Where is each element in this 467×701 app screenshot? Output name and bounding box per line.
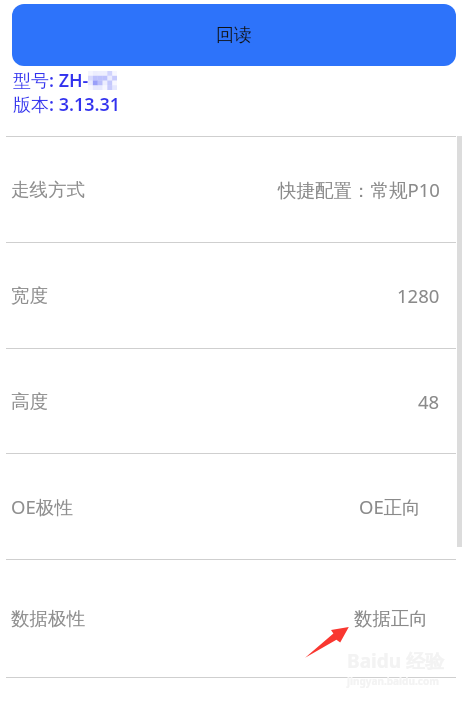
staticText: 48 [418, 389, 440, 414]
staticText: Baidu 经验 [347, 648, 444, 674]
other: Annotation arrow [300, 620, 356, 664]
staticText: 数据正向 [354, 607, 428, 630]
button[interactable]: 数据极性 [0, 559, 467, 678]
staticText: 快捷配置：常规P10 [278, 177, 440, 202]
staticText: 数据极性 [11, 607, 85, 630]
staticText: jingyan.baidu.com [347, 674, 439, 688]
staticText: 走线方式 [11, 178, 85, 201]
staticText: OE极性 [11, 494, 73, 519]
staticText: 宽度 [11, 284, 48, 307]
staticText: OE正向 [359, 494, 421, 519]
staticText: 版本: 3.13.31 [13, 92, 121, 117]
button[interactable]: OE极性 [0, 453, 467, 559]
button[interactable]: 走线方式 [0, 136, 467, 242]
staticText: 高度 [11, 390, 48, 413]
button[interactable]: 高度 [0, 348, 467, 454]
staticText: 回读 [216, 24, 252, 47]
staticText: 型号: ZH- [13, 68, 89, 93]
button[interactable]: 回读 [12, 4, 456, 66]
button[interactable]: 宽度 [0, 242, 467, 348]
staticText: 1280 [397, 283, 440, 308]
